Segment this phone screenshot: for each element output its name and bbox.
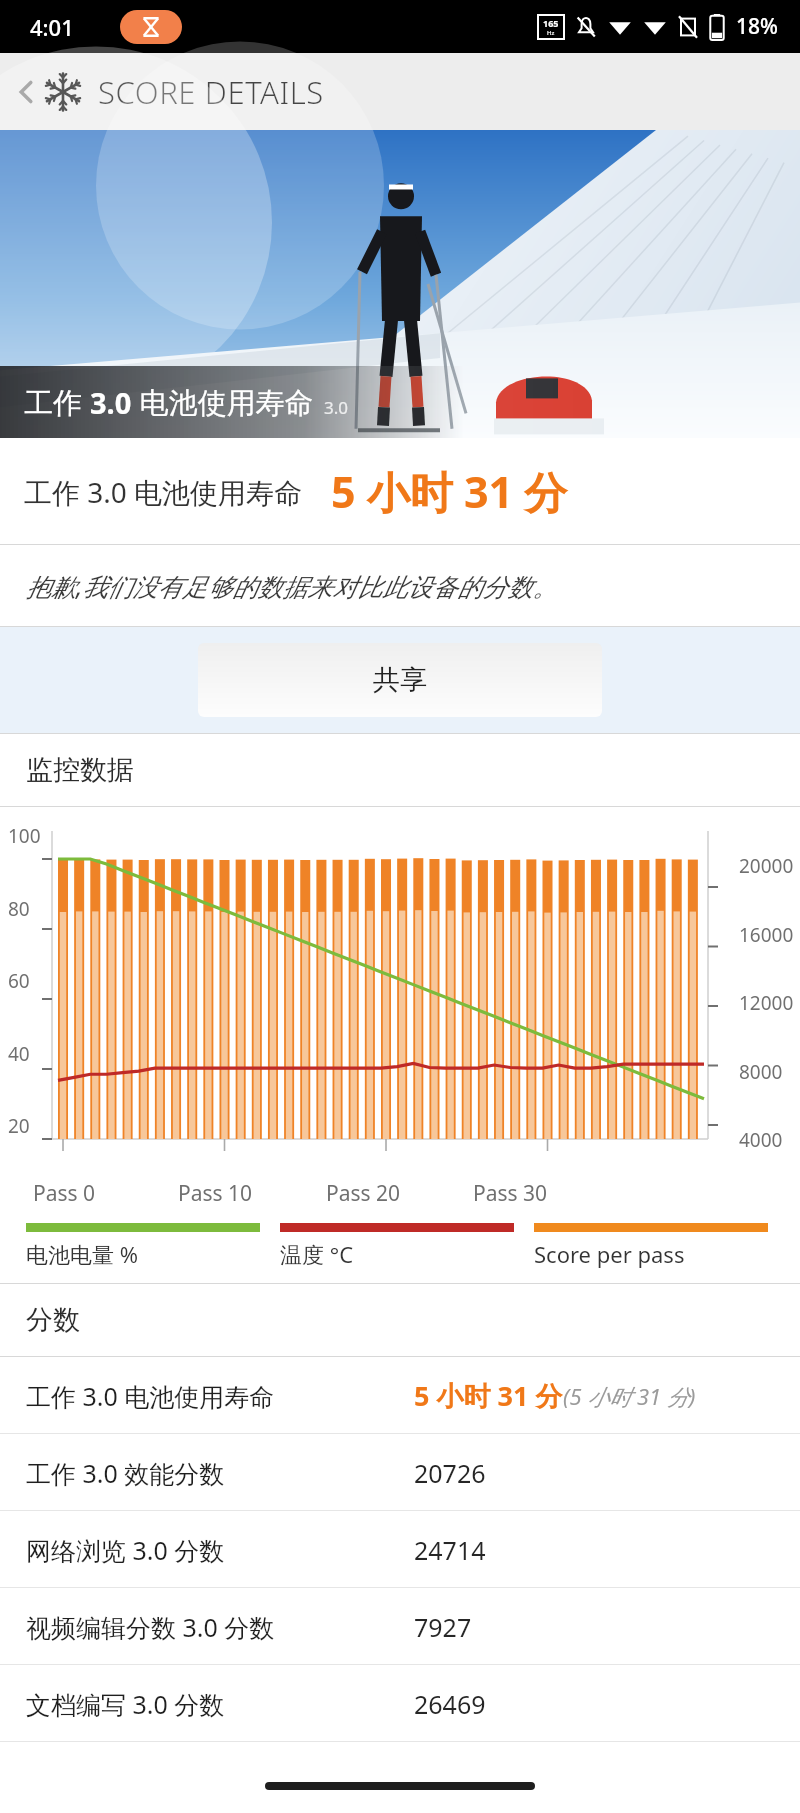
staticText: 视频编辑分数 3.0 分数 — [26, 1610, 275, 1644]
staticText: 电池使用寿命 — [132, 382, 314, 422]
staticText: 8000 — [739, 1059, 783, 1085]
button[interactable]: 文档编写 3.0 分数 — [0, 1665, 800, 1742]
button[interactable]: 网络浏览 3.0 分数 — [0, 1511, 800, 1588]
staticText: 60 — [8, 968, 30, 994]
staticText: 分数 — [26, 1303, 80, 1337]
staticText: 温度 °C — [280, 1239, 354, 1269]
staticText: 20000 — [739, 853, 794, 879]
staticText: 40 — [8, 1041, 30, 1067]
staticText: 工作 — [24, 382, 90, 422]
staticText: 18% — [736, 12, 778, 41]
staticText: 4:01 — [30, 12, 74, 42]
staticText: 20 — [8, 1113, 30, 1139]
staticText: 5 小时 31 分 — [414, 1377, 563, 1414]
staticText: 7927 — [414, 1610, 472, 1644]
staticText: Score per pass — [534, 1239, 685, 1269]
staticText: 100 — [8, 823, 41, 849]
button[interactable]: 工作 3.0 电池使用寿命 — [0, 1357, 800, 1434]
staticText: 20726 — [414, 1456, 486, 1490]
staticText: 26469 — [414, 1687, 486, 1721]
staticText: 5 小时 31 分 — [331, 462, 568, 521]
staticText: 24714 — [414, 1533, 486, 1567]
staticText: 工作 3.0 效能分数 — [26, 1456, 225, 1490]
staticText: 16000 — [739, 922, 794, 948]
staticText: (5 小时 31 分) — [563, 1381, 696, 1411]
button[interactable]: 共享 — [198, 643, 602, 717]
staticText: Pass 20 — [326, 1179, 401, 1208]
staticText: 4000 — [739, 1127, 783, 1153]
other: Back — [14, 75, 38, 109]
staticText: 12000 — [739, 990, 794, 1016]
button[interactable]: 工作 3.0 效能分数 — [0, 1434, 800, 1511]
staticText: 网络浏览 3.0 分数 — [26, 1533, 225, 1567]
staticText: 3.0 — [324, 396, 349, 419]
button[interactable]: Back — [10, 71, 328, 113]
staticText: Pass 10 — [178, 1179, 253, 1208]
staticText: Hz — [547, 29, 555, 37]
staticText: Pass 0 — [33, 1179, 96, 1208]
staticText: Pass 30 — [473, 1179, 548, 1208]
staticText: 工作 3.0 电池使用寿命 — [24, 473, 303, 511]
staticText: 电池电量 % — [26, 1239, 139, 1269]
staticText: SCORE DETAILS — [98, 71, 324, 113]
staticText: 监控数据 — [26, 753, 134, 787]
staticText: 文档编写 3.0 分数 — [26, 1687, 225, 1721]
staticText: 165 — [543, 17, 559, 29]
staticText: 抱歉,我们没有足够的数据来对比此设备的分数。 — [26, 569, 558, 603]
staticText: 80 — [8, 896, 30, 922]
button[interactable]: 视频编辑分数 3.0 分数 — [0, 1588, 800, 1665]
staticText: 共享 — [373, 663, 427, 697]
staticText: 3.0 — [90, 383, 132, 422]
staticText: 工作 3.0 电池使用寿命 — [26, 1379, 275, 1413]
